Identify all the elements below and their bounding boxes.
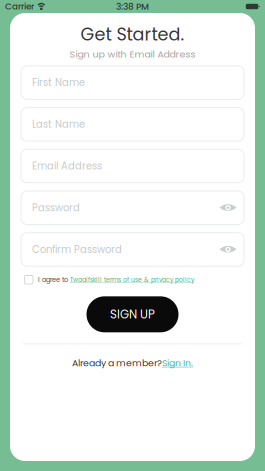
button[interactable]: First Name [21,66,244,99]
staticText: Last Name [32,117,85,131]
staticText: Sign In. [162,356,193,369]
staticText: Twaalfskill terms of use & privacy polic… [70,275,194,284]
staticText: Confirm Password [32,242,122,256]
staticText: 3:38 PM [116,0,149,13]
button[interactable]: Last Name [21,108,244,141]
button[interactable]: I agree to [10,275,255,284]
staticText: Get Started. [80,22,184,47]
button[interactable]: Email Address [21,149,244,183]
staticText: Sign up with Email Address [69,48,195,61]
staticText: SIGN UP [110,306,155,322]
staticText: Email Address [32,159,102,173]
button[interactable]: Sign In. [162,356,193,369]
staticText: Carrier [5,0,34,13]
staticText: First Name [32,76,85,89]
staticText: Password [32,201,80,215]
button[interactable]: Confirm Password [21,233,244,266]
staticText: I agree to [38,275,70,284]
button[interactable]: SIGN UP [86,296,178,332]
staticText: Already a member? [72,356,162,369]
button[interactable]: Password [21,191,244,224]
